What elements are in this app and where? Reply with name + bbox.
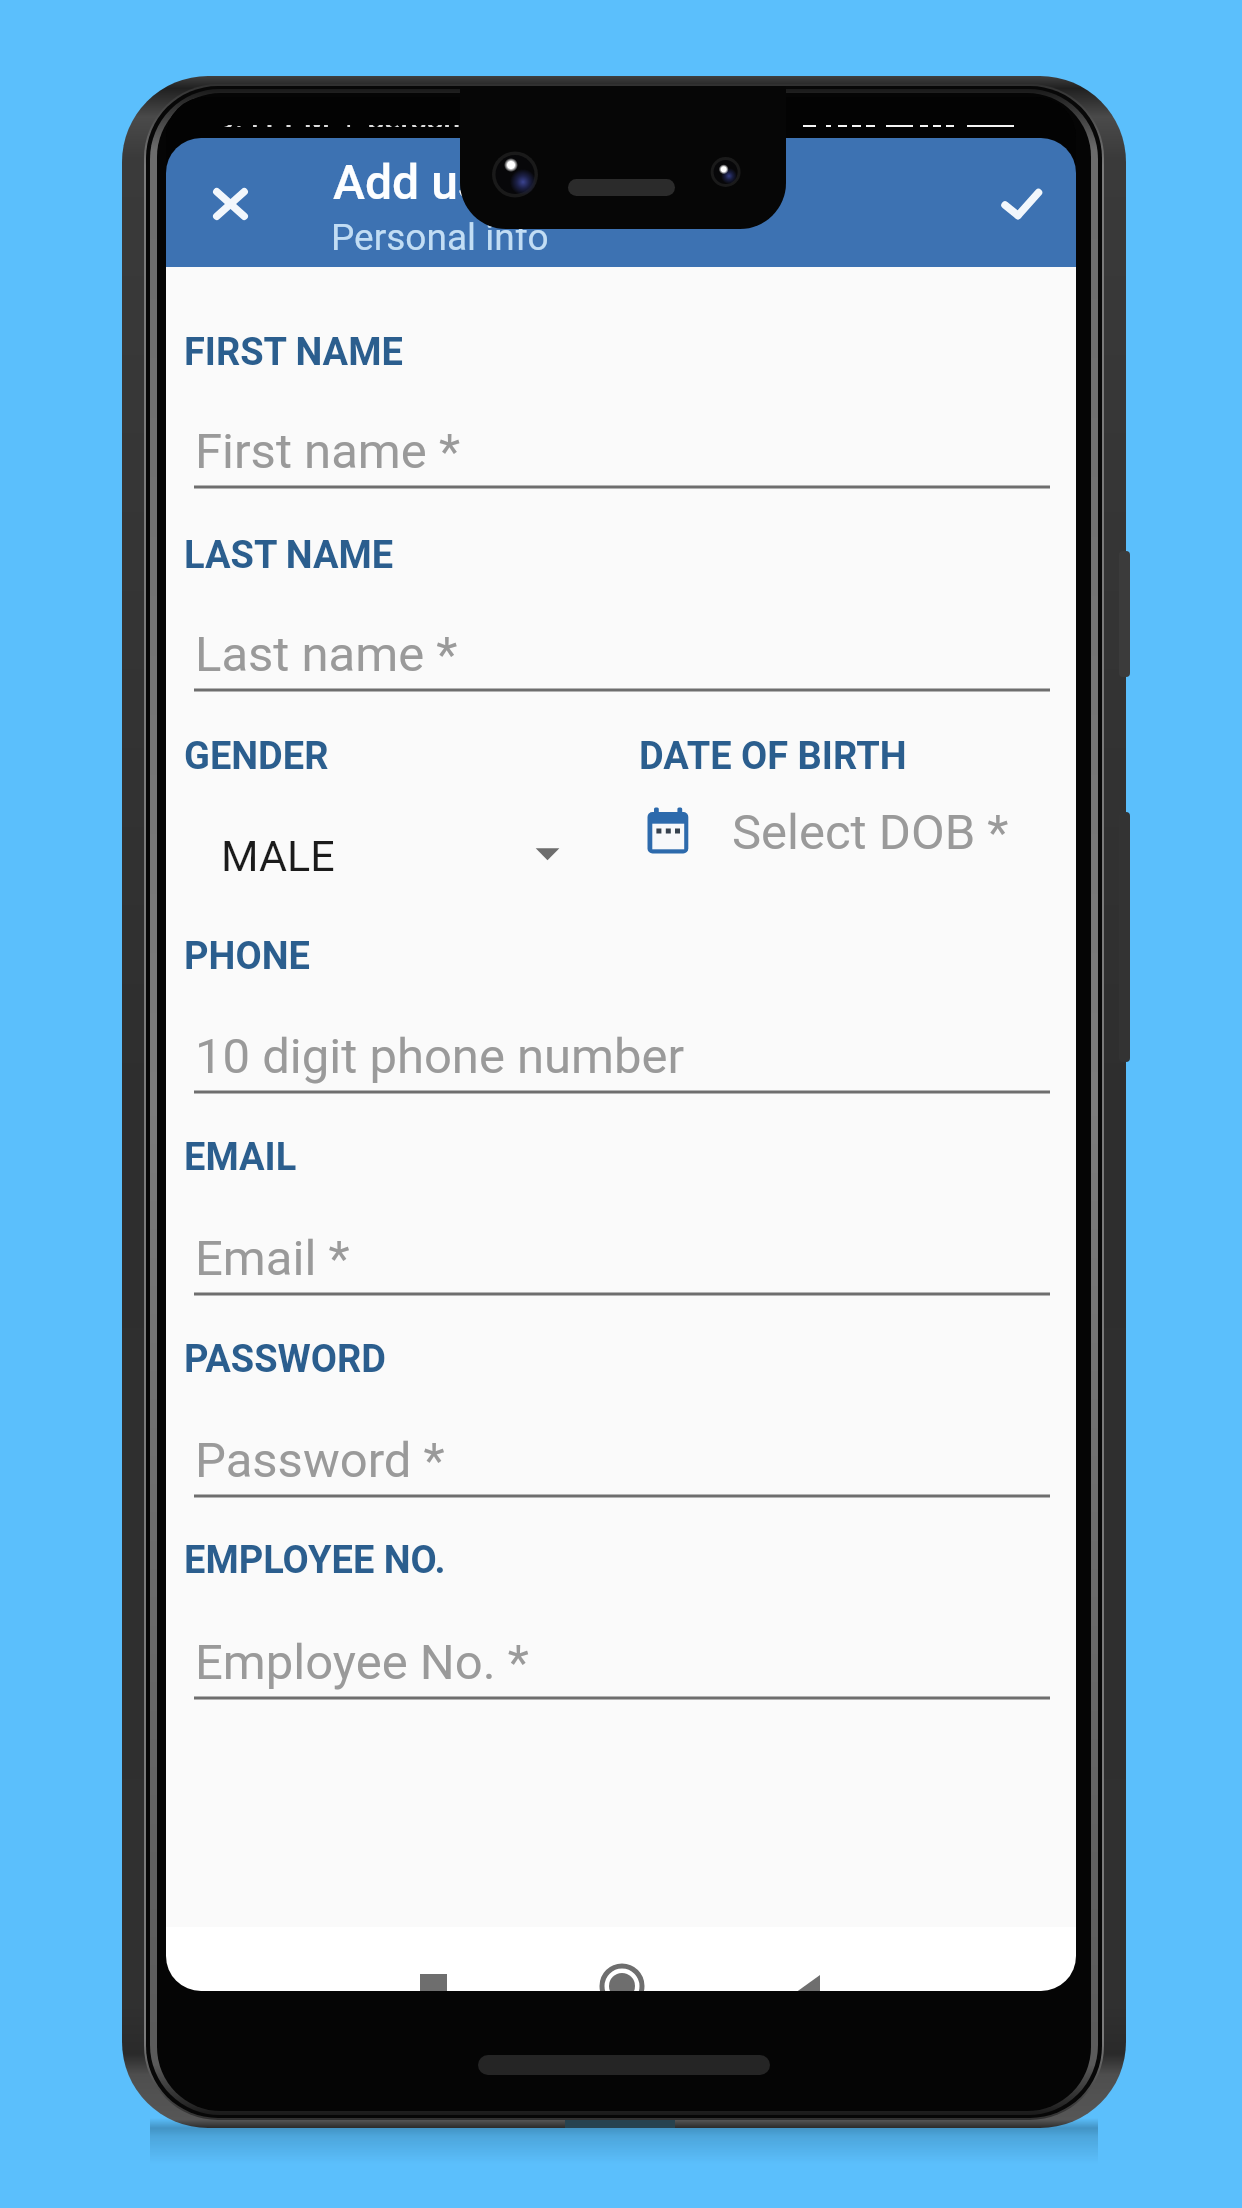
button[interactable]: Save: [976, 161, 1064, 249]
staticText: Last name *: [195, 626, 458, 683]
staticText: LAST NAME: [184, 533, 394, 578]
staticText: Select DOB *: [732, 804, 1009, 861]
button[interactable]: First name *: [194, 395, 1050, 493]
staticText: Personal info: [331, 216, 549, 259]
button[interactable]: Password *: [194, 1404, 1050, 1502]
button[interactable]: 10 digit phone number: [194, 1000, 1050, 1098]
staticText: 9:41 PM | personal: [218, 102, 485, 137]
staticText: Add user: [333, 154, 526, 210]
button[interactable]: Close: [186, 161, 274, 249]
staticText: PASSWORD: [184, 1337, 386, 1382]
staticText: DATE OF BIRTH: [639, 734, 907, 779]
button[interactable]: Email *: [194, 1202, 1050, 1300]
staticText: FIRST NAME: [184, 330, 403, 375]
staticText: Password *: [195, 1432, 445, 1489]
staticText: Employee No. *: [195, 1634, 529, 1691]
button[interactable]: Employee No. *: [194, 1606, 1050, 1704]
staticText: EMAIL: [184, 1135, 297, 1180]
staticText: PHONE: [184, 934, 310, 979]
staticText: GENDER: [184, 734, 329, 779]
staticText: Email *: [195, 1230, 350, 1287]
button[interactable]: MALE: [190, 810, 580, 900]
staticText: EMPLOYEE NO.: [184, 1538, 446, 1583]
staticText: First name *: [195, 423, 461, 480]
button[interactable]: Last name *: [194, 598, 1050, 696]
button[interactable]: Select DOB *: [636, 800, 1056, 890]
staticText: MALE: [221, 831, 335, 881]
staticText: 10 digit phone number: [195, 1028, 685, 1085]
